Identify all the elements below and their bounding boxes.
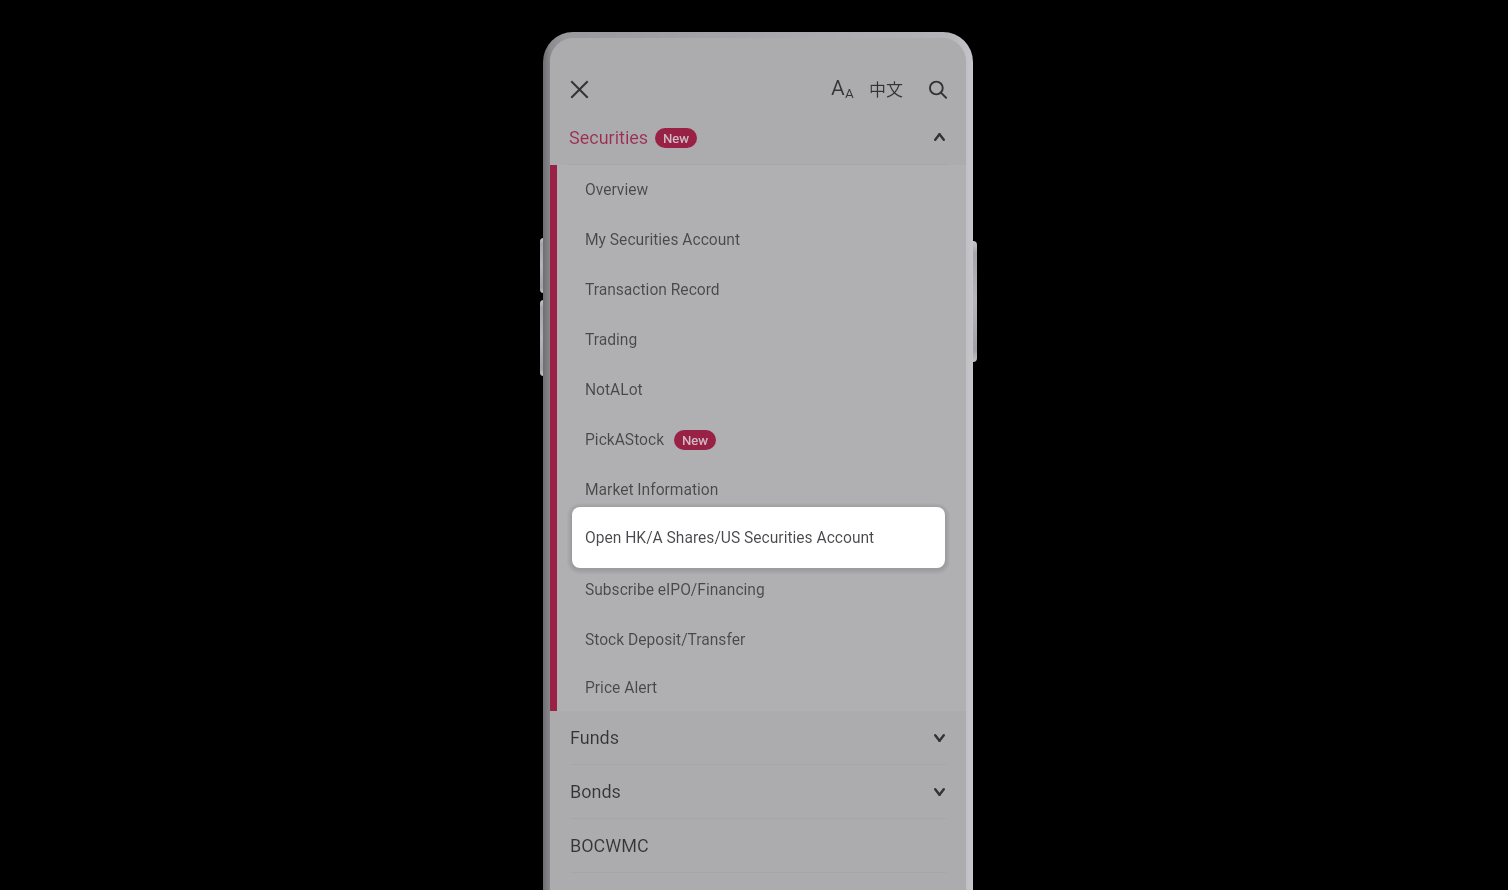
staticText: Securities [569, 127, 649, 148]
button[interactable]: Stock Deposit/Transfer [550, 615, 966, 665]
staticText: A [831, 76, 845, 101]
button[interactable]: Transaction Record [550, 265, 966, 315]
button[interactable]: Search [916, 71, 956, 111]
staticText: Funds [570, 727, 620, 748]
staticText: My Securities Account [585, 231, 741, 249]
button[interactable]: Securities [550, 110, 966, 164]
staticText: A [845, 85, 854, 101]
staticText: NotALot [585, 381, 643, 399]
button[interactable]: Open HK/A Shares/US Securities Account [550, 515, 966, 565]
staticText: Stock Deposit/Transfer [585, 631, 746, 649]
staticText: PickAStock [585, 431, 665, 449]
staticText: 中文 [869, 76, 903, 101]
button[interactable]: Bonds [550, 765, 966, 818]
button[interactable]: Close [559, 69, 599, 109]
button[interactable]: Market Information [550, 465, 966, 515]
staticText: Trading [585, 331, 638, 349]
button[interactable]: Trading [550, 315, 966, 365]
button[interactable]: Overview [550, 165, 966, 215]
staticText: Price Alert [585, 679, 658, 697]
staticText: Subscribe eIPO/Financing [585, 581, 765, 599]
button[interactable]: My Securities Account [550, 215, 966, 265]
button[interactable]: Subscribe eIPO/Financing [550, 565, 966, 615]
staticText: Transaction Record [585, 281, 720, 299]
button[interactable]: Switch language [866, 68, 906, 108]
button[interactable]: Price Alert [550, 665, 966, 711]
staticText: Open HK/A Shares/US Securities Account [585, 529, 875, 547]
button[interactable]: NotALot [550, 365, 966, 415]
button[interactable]: Text size [822, 69, 862, 109]
button[interactable]: Open HK/A Shares/US Securities Account [572, 507, 945, 568]
staticText: Bonds [570, 781, 621, 802]
button[interactable]: Funds [550, 711, 966, 764]
staticText: New [682, 433, 708, 448]
staticText: Market Information [585, 481, 719, 499]
staticText: New [663, 131, 689, 146]
staticText: BOCWMC [570, 835, 649, 856]
button[interactable]: BOCWMC [550, 819, 966, 872]
staticText: Overview [585, 181, 649, 199]
button[interactable]: PickAStock [550, 415, 966, 465]
staticText: Open HK/A Shares/US Securities Account [585, 531, 875, 549]
